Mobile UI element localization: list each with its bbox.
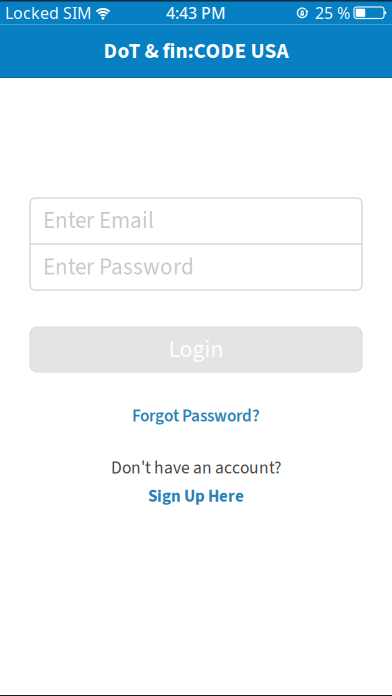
staticText: 25 % xyxy=(315,2,350,23)
staticText: Don't have an account? xyxy=(111,455,281,480)
staticText: Login xyxy=(168,333,223,366)
button[interactable]: Login xyxy=(30,327,362,372)
staticText: Sign Up Here xyxy=(148,484,244,508)
button[interactable]: Forgot Password? xyxy=(132,404,260,428)
button[interactable]: Enter Password xyxy=(30,244,362,290)
staticText: Locked SIM xyxy=(5,2,92,23)
staticText: DoT & fin:CODE USA xyxy=(103,36,288,66)
staticText: Enter Password xyxy=(43,251,194,284)
button[interactable]: Sign Up Here xyxy=(148,484,244,508)
staticText: 4:43 PM xyxy=(166,2,226,23)
staticText: Enter Email xyxy=(43,204,154,237)
button[interactable]: Enter Email xyxy=(30,198,362,243)
staticText: Forgot Password? xyxy=(132,404,260,428)
